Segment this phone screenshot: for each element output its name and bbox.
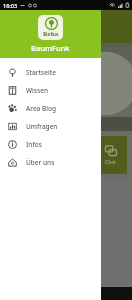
other: Umfragen [8,122,17,131]
staticText: Startseite [26,68,56,77]
button[interactable]: Chat [94,136,127,174]
staticText: 16:03 [3,2,18,9]
staticText: Umfragen [26,122,58,131]
button[interactable]: Area Blog [0,99,101,117]
staticText: Area Blog [26,104,57,113]
button[interactable]: Über uns [0,153,101,171]
button[interactable]: Umfragen [0,117,101,135]
staticText: Chat [105,159,116,166]
button[interactable]: Startseite [0,63,101,81]
staticText: Reha [43,30,59,38]
other: Über uns [8,158,17,167]
other: Area Blog [8,104,17,113]
staticText: Infos [26,140,42,149]
staticText: Wissen [26,86,48,95]
other: Wissen [8,86,17,95]
button[interactable]: Infos [0,135,101,153]
other: Infos [8,140,17,149]
staticText: Über uns [26,158,55,167]
other: Startseite [8,68,17,77]
staticText: BaumFunk [31,43,70,53]
button[interactable]: Wissen [0,81,101,99]
